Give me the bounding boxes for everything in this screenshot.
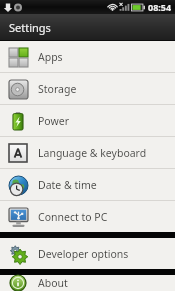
staticText: Power — [38, 114, 70, 128]
staticText: Connect to PC — [38, 210, 108, 224]
staticText: Language & keyboard — [38, 146, 147, 160]
button[interactable]: Storage — [0, 73, 175, 104]
button[interactable]: Date & time — [0, 169, 175, 200]
button[interactable]: Language & keyboard — [0, 137, 175, 168]
staticText: 08:54 — [148, 1, 172, 13]
button[interactable]: Connect to PC — [0, 201, 175, 232]
staticText: Storage — [38, 82, 77, 96]
staticText: Settings — [9, 20, 51, 35]
staticText: Apps — [38, 50, 63, 64]
button[interactable]: About — [0, 275, 175, 291]
staticText: Date & time — [38, 178, 97, 192]
staticText: About — [38, 276, 68, 290]
button[interactable]: Developer options — [0, 238, 175, 269]
staticText: Developer options — [38, 247, 129, 261]
button[interactable]: Power — [0, 105, 175, 136]
button[interactable]: Apps — [0, 41, 175, 72]
